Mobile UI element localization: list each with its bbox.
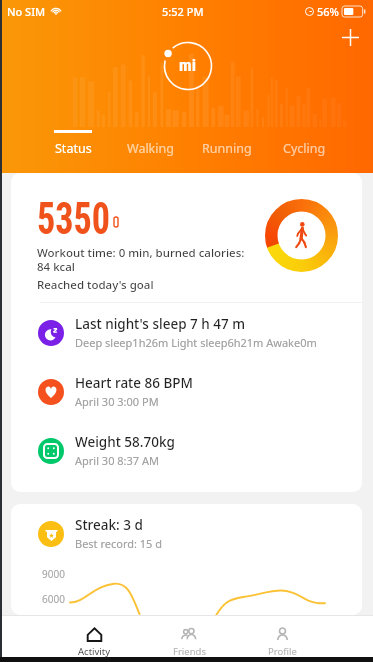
staticText: 6000 bbox=[42, 592, 65, 606]
staticText: No SIM bbox=[7, 4, 46, 19]
staticText: 56% bbox=[317, 4, 339, 19]
button[interactable]: Streak: 3 d bbox=[11, 504, 362, 563]
staticText: April 30 8:37 AM bbox=[75, 453, 160, 468]
button[interactable]: Status bbox=[35, 130, 111, 170]
button[interactable]: Profile bbox=[246, 626, 318, 658]
staticText: Deep sleep1h26m Light sleep6h21m Awake0m bbox=[75, 335, 317, 350]
button[interactable]: Running bbox=[189, 130, 265, 170]
staticText: mi bbox=[179, 55, 197, 75]
staticText: Running bbox=[202, 140, 252, 157]
button[interactable]: Friends bbox=[153, 626, 225, 658]
staticText: April 30 3:00 PM bbox=[75, 394, 159, 409]
staticText: 5:52 PM bbox=[162, 4, 204, 19]
staticText: Best record: 15 d bbox=[75, 536, 163, 551]
button[interactable]: Add device bbox=[333, 20, 367, 54]
staticText: Reached today's goal bbox=[37, 277, 154, 293]
staticText: Heart rate 86 BPM bbox=[75, 374, 193, 392]
staticText: Weight 58.70kg bbox=[75, 433, 175, 451]
staticText: Cycling bbox=[283, 140, 326, 157]
staticText: Profile bbox=[268, 645, 297, 658]
button[interactable]: Walking bbox=[112, 130, 188, 170]
staticText: Activity bbox=[78, 645, 111, 658]
staticText: Friends bbox=[173, 645, 206, 658]
staticText: Streak: 3 d bbox=[75, 516, 143, 534]
staticText: Workout time: 0 min, burned calories: 84… bbox=[37, 245, 249, 274]
button[interactable]: Activity bbox=[58, 626, 130, 658]
staticText: 9000 bbox=[42, 567, 65, 581]
staticText: 5350 bbox=[37, 193, 111, 245]
staticText: Walking bbox=[127, 140, 174, 157]
button[interactable]: Cycling bbox=[266, 130, 342, 170]
staticText: Last night's sleep 7 h 47 m bbox=[75, 315, 245, 333]
button[interactable]: Heart rate 86 BPM bbox=[11, 362, 362, 421]
staticText: Status bbox=[55, 140, 92, 157]
button[interactable]: Last night's sleep 7 h 47 m bbox=[11, 303, 362, 362]
button[interactable]: Weight 58.70kg bbox=[11, 421, 362, 480]
